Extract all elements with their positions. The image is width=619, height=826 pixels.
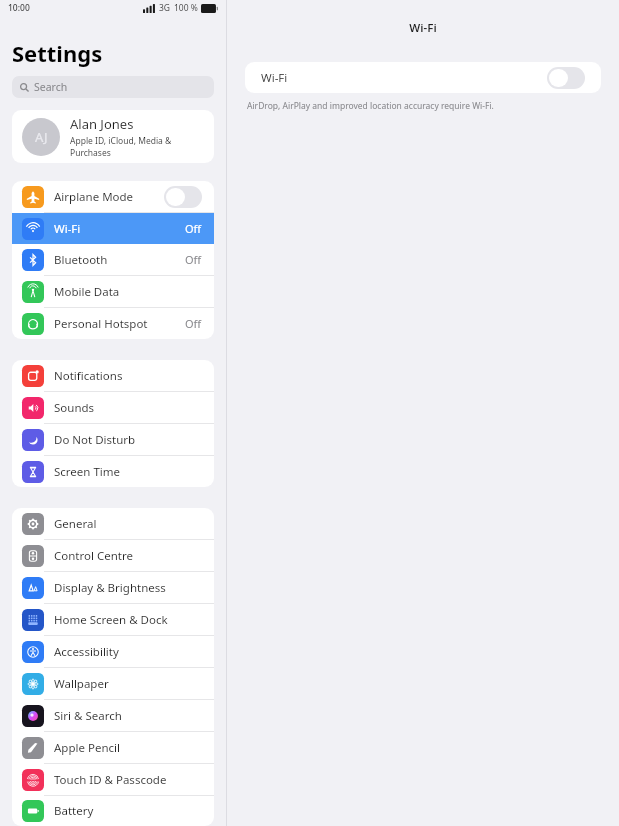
button[interactable]: Mobile Data (12, 276, 214, 307)
button[interactable]: Control Centre (12, 540, 214, 571)
button[interactable]: Wi-Fi (12, 213, 214, 244)
staticText: 100 % (174, 2, 198, 14)
staticText: Wi-Fi (227, 20, 619, 36)
staticText: Off (185, 221, 202, 236)
staticText: Display & Brightness (54, 580, 166, 596)
button[interactable]: Wi-Fi (245, 62, 601, 93)
button[interactable]: Screen Time (12, 456, 214, 487)
button[interactable]: Display & Brightness (12, 572, 214, 603)
button[interactable]: Wallpaper (12, 668, 214, 699)
button[interactable]: Home Screen & Dock (12, 604, 214, 635)
staticText: Accessibility (54, 644, 119, 660)
staticText: Airplane Mode (54, 189, 134, 205)
staticText: Search (34, 80, 68, 94)
button[interactable]: Airplane Mode (12, 181, 214, 212)
button[interactable]: Apple Pencil (12, 732, 214, 763)
button[interactable]: AJ (12, 110, 214, 163)
button[interactable]: Search (12, 76, 214, 98)
staticText: Bluetooth (54, 252, 108, 268)
staticText: Control Centre (54, 548, 133, 564)
button[interactable]: Notifications (12, 360, 214, 391)
staticText: Apple ID, iCloud, Media & Purchases (70, 135, 214, 159)
staticText: AJ (35, 128, 48, 146)
button[interactable]: Siri & Search (12, 700, 214, 731)
button[interactable]: Sounds (12, 392, 214, 423)
staticText: Screen Time (54, 464, 121, 480)
button[interactable]: General (12, 508, 214, 539)
button[interactable]: Battery (12, 796, 214, 826)
staticText: Mobile Data (54, 284, 120, 300)
staticText: Apple Pencil (54, 740, 120, 756)
staticText: General (54, 516, 97, 532)
button[interactable]: Accessibility (12, 636, 214, 667)
staticText: Do Not Disturb (54, 432, 136, 448)
staticText: Wi-Fi (261, 70, 288, 86)
staticText: Off (185, 252, 202, 267)
staticText: AirDrop, AirPlay and improved location a… (247, 100, 494, 112)
staticText: 3G (159, 2, 171, 14)
button[interactable]: Do Not Disturb (12, 424, 214, 455)
staticText: Alan Jones (70, 115, 134, 133)
staticText: Sounds (54, 400, 95, 416)
button[interactable]: Personal Hotspot (12, 308, 214, 339)
staticText: Personal Hotspot (54, 316, 148, 332)
staticText: Notifications (54, 368, 123, 384)
staticText: Home Screen & Dock (54, 612, 168, 628)
staticText: Off (185, 316, 202, 331)
staticText: Battery (54, 803, 94, 819)
staticText: Siri & Search (54, 708, 122, 724)
staticText: 10:00 (8, 2, 30, 14)
staticText: Wallpaper (54, 676, 109, 692)
button[interactable]: Touch ID & Passcode (12, 764, 214, 795)
button[interactable]: Bluetooth (12, 244, 214, 275)
staticText: Touch ID & Passcode (54, 772, 167, 788)
staticText: Wi-Fi (54, 221, 81, 237)
staticText: Settings (12, 38, 103, 68)
